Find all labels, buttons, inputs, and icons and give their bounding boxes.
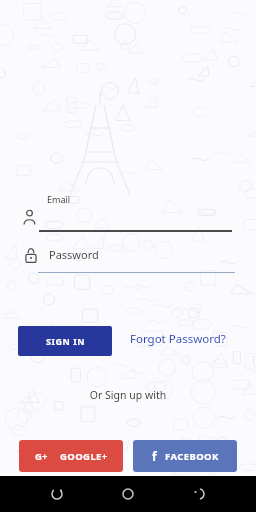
staticText: Or Sign up with: [0, 388, 256, 402]
button[interactable]: SIGN IN: [18, 326, 112, 356]
button[interactable]: [114, 480, 142, 508]
button[interactable]: [185, 480, 213, 508]
button[interactable]: Forgot Password?: [130, 331, 226, 347]
staticText: G+: [35, 450, 48, 463]
button[interactable]: [23, 208, 233, 232]
button[interactable]: f: [133, 440, 237, 472]
staticText: SIGN IN: [46, 335, 85, 347]
staticText: Email: [47, 193, 71, 205]
staticText: GOOGLE+: [60, 450, 108, 463]
staticText: f: [152, 448, 157, 464]
button[interactable]: Password: [25, 246, 235, 273]
staticText: Password: [49, 247, 99, 262]
staticText: FACEBOOK: [165, 450, 219, 463]
button[interactable]: G+: [19, 440, 123, 472]
button[interactable]: [43, 480, 71, 508]
